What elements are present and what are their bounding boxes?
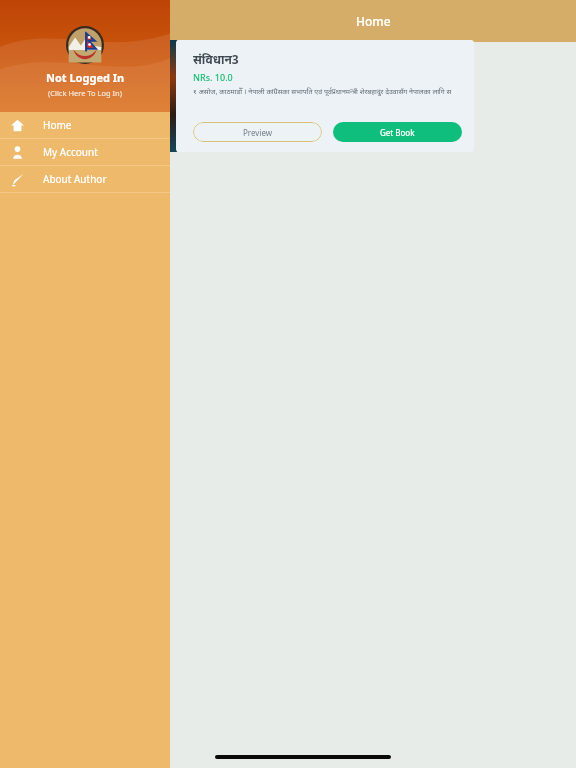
- button[interactable]: Preview: [193, 122, 322, 142]
- button[interactable]: Get Book: [333, 122, 462, 142]
- staticText: (Click Here To Log In): [48, 88, 122, 98]
- staticText: Get Book: [380, 127, 415, 138]
- staticText: My Account: [43, 145, 98, 159]
- button[interactable]: My Account: [0, 139, 170, 165]
- staticText: About Author: [43, 172, 107, 186]
- staticText: १ असोज, काठमाडौँ । नेपाली कांग्रेसका सभा…: [193, 87, 452, 97]
- staticText: Not Logged In: [46, 70, 125, 85]
- button[interactable]: Home: [0, 112, 170, 138]
- staticText: संविधान3: [193, 51, 239, 67]
- button[interactable]: संविधान3: [176, 40, 474, 152]
- staticText: Home: [43, 118, 72, 132]
- button[interactable]: About Author: [0, 166, 170, 192]
- staticText: NRs. 10.0: [193, 71, 233, 83]
- staticText: Preview: [243, 127, 273, 138]
- staticText: Home: [356, 13, 391, 29]
- button[interactable]: Not Logged In: [0, 0, 170, 112]
